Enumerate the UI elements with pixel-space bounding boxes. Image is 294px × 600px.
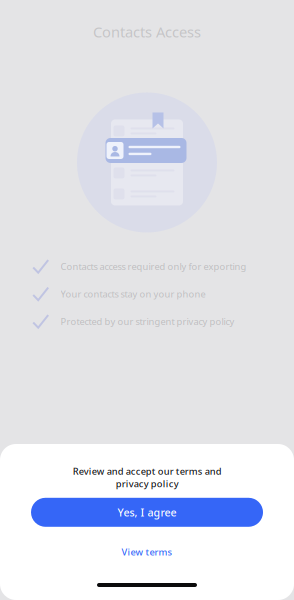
staticText: Your contacts stay on your phone [60, 288, 205, 300]
staticText: Contacts access required only for export… [60, 260, 246, 273]
button[interactable]: Yes, I agree [31, 498, 263, 527]
staticText: View terms [121, 546, 172, 558]
staticText: Yes, I agree [117, 505, 176, 519]
staticText: Review and accept our terms and privacy … [72, 465, 221, 490]
staticText: Contacts Access [93, 22, 201, 41]
button[interactable]: View terms [121, 538, 172, 566]
staticText: Protected by our stringent privacy polic… [60, 315, 234, 328]
